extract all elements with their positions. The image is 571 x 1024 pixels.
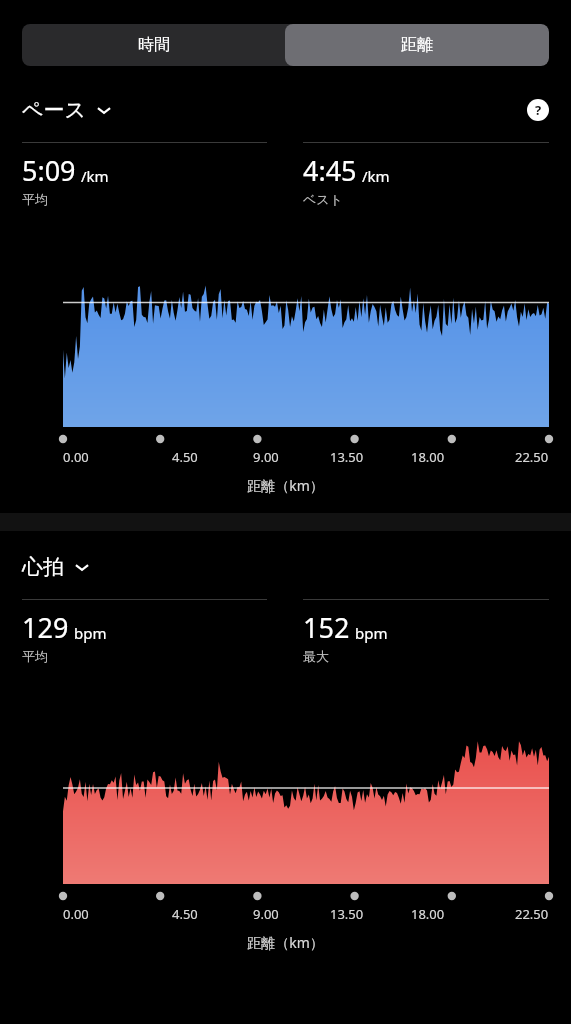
button[interactable]: Help [525,97,551,123]
staticText: 22.50 [515,905,549,923]
staticText: 13.50 [330,905,364,923]
staticText: 距離（km） [0,476,571,495]
staticText: 22.50 [515,448,549,466]
staticText: 最大 [303,648,329,664]
staticText: 時間 [138,35,170,55]
button[interactable]: ペース [22,97,112,123]
button[interactable]: 時間 [22,24,285,66]
staticText: 13.50 [330,448,364,466]
staticText: ベスト [303,191,343,207]
staticText: 心拍 [22,554,64,580]
staticText: 9.00 [253,448,279,466]
staticText: 距離（km） [0,933,571,952]
staticText: 4.50 [172,448,198,466]
staticText: /km [362,166,390,186]
staticText: 5:09 [22,152,76,189]
staticText: 0.00 [63,905,89,923]
staticText: 平均 [22,648,48,664]
staticText: /km [81,166,109,186]
staticText: ペース [22,97,86,123]
staticText: 0.00 [63,448,89,466]
staticText: 平均 [22,191,48,207]
staticText: 4:45 [303,152,357,189]
staticText: 9.00 [253,905,279,923]
button[interactable]: 心拍 [22,554,90,580]
staticText: 18.00 [411,448,445,466]
staticText: 129 [22,609,69,646]
button[interactable]: 距離 [285,24,549,66]
staticText: 18.00 [411,905,445,923]
staticText: 4.50 [172,905,198,923]
staticText: 152 [303,609,350,646]
staticText: 距離 [401,35,433,55]
staticText: ? [535,101,542,119]
staticText: bpm [74,623,107,643]
staticText: bpm [355,623,388,643]
